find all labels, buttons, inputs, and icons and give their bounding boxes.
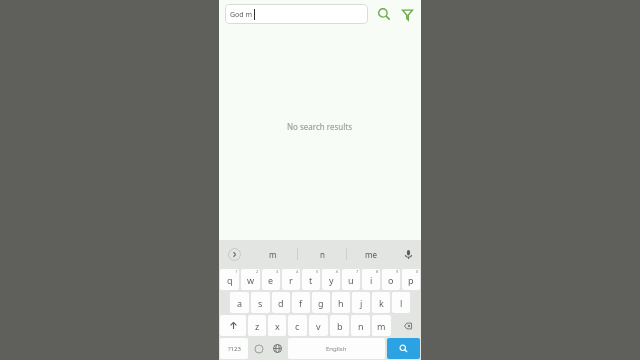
- staticText: English: [326, 345, 347, 353]
- button[interactable]: l: [392, 292, 410, 313]
- button[interactable]: f: [292, 292, 310, 313]
- button[interactable]: n: [298, 240, 346, 268]
- button[interactable]: Voice input: [395, 240, 421, 268]
- staticText: me: [365, 249, 377, 260]
- button[interactable]: 7: [342, 269, 360, 290]
- staticText: g: [318, 297, 324, 309]
- button[interactable]: x: [268, 315, 286, 336]
- staticText: u: [348, 274, 354, 286]
- staticText: 1: [235, 269, 238, 274]
- staticText: 0: [416, 269, 419, 274]
- button[interactable]: English: [288, 338, 385, 359]
- button[interactable]: 1: [220, 269, 239, 290]
- staticText: p: [408, 274, 414, 286]
- staticText: No search results: [287, 121, 353, 132]
- staticText: n: [358, 320, 364, 332]
- button[interactable]: 5: [302, 269, 320, 290]
- staticText: v: [316, 320, 321, 332]
- staticText: m: [269, 249, 277, 260]
- staticText: 6: [336, 269, 339, 274]
- button[interactable]: 9: [382, 269, 400, 290]
- button[interactable]: Filter: [397, 4, 417, 24]
- button[interactable]: g: [312, 292, 330, 313]
- staticText: d: [278, 297, 284, 309]
- button[interactable]: Backspace: [393, 315, 420, 336]
- staticText: a: [237, 297, 243, 309]
- staticText: 3: [276, 269, 279, 274]
- button[interactable]: v: [309, 315, 328, 336]
- staticText: t: [309, 274, 313, 286]
- button[interactable]: 4: [282, 269, 300, 290]
- staticText: 7: [356, 269, 359, 274]
- staticText: k: [379, 297, 384, 309]
- button[interactable]: Search: [374, 4, 394, 24]
- staticText: 9: [396, 269, 399, 274]
- button[interactable]: 6: [322, 269, 340, 290]
- staticText: x: [275, 320, 280, 332]
- button[interactable]: 0: [402, 269, 420, 290]
- staticText: ?123: [228, 345, 241, 353]
- staticText: j: [360, 297, 363, 309]
- staticText: n: [320, 249, 325, 260]
- button[interactable]: Emoji: [250, 338, 267, 359]
- button[interactable]: Search: [387, 338, 420, 359]
- staticText: 2: [256, 269, 259, 274]
- button[interactable]: s: [251, 292, 270, 313]
- staticText: e: [268, 274, 274, 286]
- staticText: God m: [230, 10, 253, 20]
- button[interactable]: n: [351, 315, 370, 336]
- button[interactable]: God m: [225, 4, 368, 24]
- staticText: 8: [376, 269, 379, 274]
- staticText: z: [255, 320, 260, 332]
- staticText: s: [258, 297, 263, 309]
- staticText: o: [388, 274, 394, 286]
- button[interactable]: Change language: [269, 338, 286, 359]
- button[interactable]: k: [372, 292, 390, 313]
- button[interactable]: h: [332, 292, 350, 313]
- staticText: l: [400, 297, 403, 309]
- button[interactable]: a: [230, 292, 249, 313]
- button[interactable]: c: [288, 315, 307, 336]
- button[interactable]: me: [347, 240, 395, 268]
- button[interactable]: m: [372, 315, 391, 336]
- button[interactable]: 8: [362, 269, 380, 290]
- button[interactable]: d: [272, 292, 290, 313]
- button[interactable]: 2: [241, 269, 260, 290]
- staticText: b: [337, 320, 343, 332]
- button[interactable]: Shift: [220, 315, 246, 336]
- button[interactable]: 3: [262, 269, 280, 290]
- button[interactable]: z: [248, 315, 266, 336]
- staticText: r: [289, 274, 293, 286]
- button[interactable]: ?123: [220, 338, 248, 359]
- button[interactable]: Expand suggestions: [219, 240, 249, 268]
- button[interactable]: j: [352, 292, 370, 313]
- staticText: m: [377, 320, 386, 332]
- staticText: y: [329, 274, 334, 286]
- staticText: f: [299, 297, 303, 309]
- staticText: h: [338, 297, 344, 309]
- staticText: w: [247, 274, 255, 286]
- staticText: c: [295, 320, 300, 332]
- button[interactable]: m: [249, 240, 297, 268]
- staticText: i: [370, 274, 373, 286]
- staticText: 4: [296, 269, 299, 274]
- button[interactable]: b: [330, 315, 349, 336]
- staticText: q: [227, 274, 233, 286]
- staticText: 5: [316, 269, 319, 274]
